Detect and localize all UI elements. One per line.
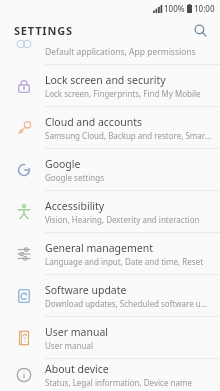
staticText: Google settings	[45, 172, 104, 183]
button[interactable]: Lock screen and security	[0, 65, 220, 107]
staticText: Language and input, Date and time, Reset	[45, 256, 204, 267]
button[interactable]: Search	[188, 18, 212, 42]
button[interactable]: Google	[0, 149, 220, 191]
button[interactable]: About device	[0, 359, 220, 391]
staticText: Accessibility	[45, 199, 105, 213]
button[interactable]: Default applications, App permissions	[0, 44, 220, 65]
staticText: Lock screen and security	[45, 73, 166, 87]
staticText: Google	[45, 157, 81, 171]
staticText: Status, Legal information, Device name	[45, 377, 192, 388]
staticText: Cloud and accounts	[45, 115, 143, 129]
button[interactable]: User manual	[0, 317, 220, 359]
staticText: Vision, Hearing, Dexterity and interacti…	[45, 214, 200, 225]
staticText: Software update	[45, 283, 127, 297]
staticText: 100%	[164, 3, 185, 14]
staticText: User manual	[45, 325, 108, 339]
staticText: SETTINGS	[14, 23, 73, 38]
staticText: General management	[45, 241, 153, 255]
button[interactable]: Accessibility	[0, 191, 220, 233]
staticText: 10:00	[194, 3, 215, 14]
staticText: Default applications, App permissions	[45, 46, 196, 58]
button[interactable]: Cloud and accounts	[0, 107, 220, 149]
staticText: User manual	[45, 340, 93, 351]
button[interactable]: General management	[0, 233, 220, 275]
staticText: Download updates, Scheduled software up…	[45, 298, 212, 309]
staticText: Samsung Cloud, Backup and restore, Smart…	[45, 130, 212, 141]
button[interactable]: Software update	[0, 275, 220, 317]
staticText: About device	[45, 362, 109, 376]
staticText: Lock screen, Fingerprints, Find My Mobil…	[45, 88, 201, 99]
